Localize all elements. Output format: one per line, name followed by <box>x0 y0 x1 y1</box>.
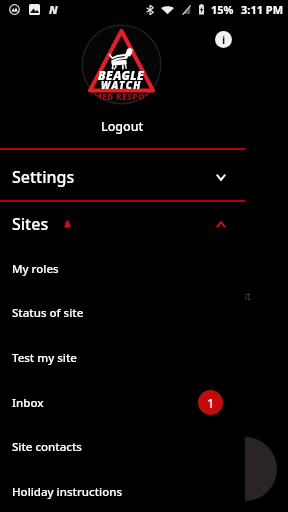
button[interactable]: Info <box>215 31 232 48</box>
staticText: Status of site <box>12 305 84 321</box>
staticText: N <box>49 2 58 17</box>
staticText: WATCH <box>101 78 142 92</box>
staticText: Settings <box>12 166 75 188</box>
button[interactable]: Add <box>213 437 277 501</box>
button[interactable]: Holiday instructions <box>0 470 245 512</box>
button[interactable]: Inbox <box>0 381 245 425</box>
button[interactable]: Status of site <box>0 291 245 335</box>
staticText: ARMED RESPONSE <box>81 91 162 103</box>
button[interactable]: Logout <box>0 113 245 139</box>
staticText: My roles <box>12 261 59 277</box>
staticText: Test my site <box>12 350 77 366</box>
button[interactable]: My roles <box>0 247 245 291</box>
button[interactable]: Test my site <box>0 336 245 380</box>
staticText: i <box>222 32 226 47</box>
staticText: 15% <box>211 2 234 17</box>
button[interactable]: Site contacts <box>0 425 245 469</box>
staticText: Site contacts <box>12 439 82 455</box>
button[interactable]: Settings <box>0 155 245 199</box>
staticText: BEAGLE <box>98 67 145 83</box>
staticText: st <box>242 289 251 303</box>
staticText: Logout <box>101 118 144 135</box>
staticText: 1 <box>207 394 215 412</box>
staticText: 3:11 PM <box>241 2 284 17</box>
staticText: Sites <box>12 213 49 235</box>
staticText: Inbox <box>12 395 44 411</box>
button[interactable]: Sites <box>0 202 245 246</box>
staticText: Holiday instructions <box>12 484 122 500</box>
